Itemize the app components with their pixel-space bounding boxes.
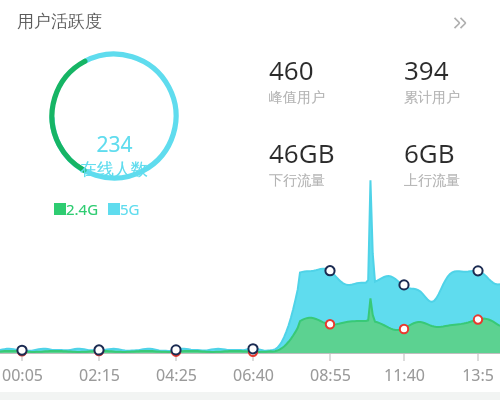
button[interactable]: 394 — [404, 52, 500, 107]
staticText: 6GB — [404, 135, 455, 170]
button[interactable]: 234 — [42, 44, 186, 188]
staticText: 11:40 — [384, 364, 425, 386]
button[interactable]: 6GB — [404, 135, 500, 190]
staticText: 峰值用户 — [269, 89, 325, 107]
button[interactable]: 460 — [269, 52, 389, 107]
staticText: 234 — [96, 130, 133, 159]
staticText: 用户活跃度 — [17, 11, 102, 32]
staticText: 下行流量 — [269, 172, 325, 190]
staticText: 上行流量 — [404, 172, 460, 190]
staticText: 00:05 — [2, 364, 43, 386]
staticText: 04:25 — [156, 364, 197, 386]
staticText: 460 — [269, 52, 314, 87]
staticText: 累计用户 — [404, 89, 460, 107]
staticText: 06:40 — [233, 364, 274, 386]
staticText: 394 — [404, 52, 449, 87]
button[interactable]: 46GB — [269, 135, 389, 190]
staticText: 46GB — [269, 135, 335, 170]
staticText: 2.4G — [66, 199, 99, 219]
button[interactable]: More — [444, 6, 480, 40]
staticText: 5G — [120, 199, 140, 219]
staticText: 02:15 — [79, 364, 120, 386]
staticText: 13:5 — [462, 364, 494, 386]
staticText: 08:55 — [310, 364, 351, 386]
staticText: 在线人数 — [80, 159, 148, 180]
